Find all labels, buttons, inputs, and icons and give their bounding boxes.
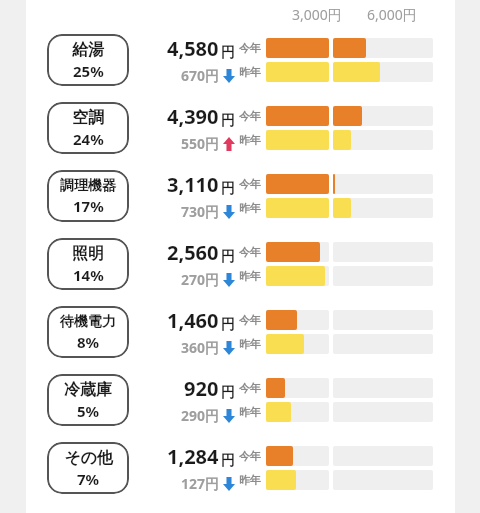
staticText: 127円 [181,474,220,493]
staticText: 今年 [239,313,261,327]
staticText: 730円 [181,202,220,221]
staticText: 360円 [181,338,220,357]
staticText: 14% [73,265,104,285]
staticText: 290円 [181,406,220,425]
staticText: 今年 [239,381,261,395]
staticText: 6,000円 [367,5,417,24]
staticText: 今年 [239,177,261,191]
staticText: 今年 [239,109,261,123]
staticText: 円 [221,316,235,334]
staticText: 円 [221,180,235,198]
staticText: 円 [221,248,235,266]
staticText: 4,580 [167,35,219,62]
button[interactable]: 調理機器 [26,162,455,230]
staticText: 昨年 [239,65,261,79]
staticText: 昨年 [239,201,261,215]
staticText: 昨年 [239,473,261,487]
staticText: 調理機器 [60,177,116,195]
staticText: 24% [73,129,104,149]
staticText: 今年 [239,41,261,55]
staticText: 今年 [239,245,261,259]
staticText: 4,390 [167,103,219,130]
staticText: 670円 [181,66,220,85]
button[interactable]: その他 [26,434,455,502]
staticText: 昨年 [239,269,261,283]
staticText: 冷蔵庫 [64,380,112,400]
staticText: 920 [184,375,219,402]
staticText: 今年 [239,449,261,463]
staticText: 給湯 [72,40,104,60]
staticText: 5% [77,401,100,421]
staticText: 空調 [72,108,104,128]
staticText: 3,110 [167,171,219,198]
staticText: 円 [221,44,235,62]
staticText: 17% [73,196,104,216]
staticText: 昨年 [239,133,261,147]
button[interactable]: 給湯 [26,26,455,94]
staticText: 8% [77,332,100,352]
button[interactable]: 空調 [26,94,455,162]
button[interactable]: 照明 [26,230,455,298]
staticText: 550円 [181,134,220,153]
staticText: 待機電力 [60,313,116,331]
button[interactable]: 待機電力 [26,298,455,366]
staticText: 円 [221,384,235,402]
staticText: 2,560 [167,239,219,266]
staticText: 3,000円 [292,5,342,24]
staticText: 円 [221,452,235,470]
button[interactable]: 冷蔵庫 [26,366,455,434]
staticText: 25% [73,61,104,81]
staticText: その他 [64,448,113,468]
staticText: 円 [221,112,235,130]
staticText: 照明 [72,244,104,264]
staticText: 昨年 [239,405,261,419]
staticText: 昨年 [239,337,261,351]
staticText: 270円 [181,270,220,289]
staticText: 7% [77,469,100,489]
staticText: 1,460 [167,307,219,334]
staticText: 1,284 [167,443,219,470]
